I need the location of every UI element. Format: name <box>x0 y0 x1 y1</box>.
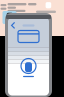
button[interactable]: Back <box>10 21 17 30</box>
